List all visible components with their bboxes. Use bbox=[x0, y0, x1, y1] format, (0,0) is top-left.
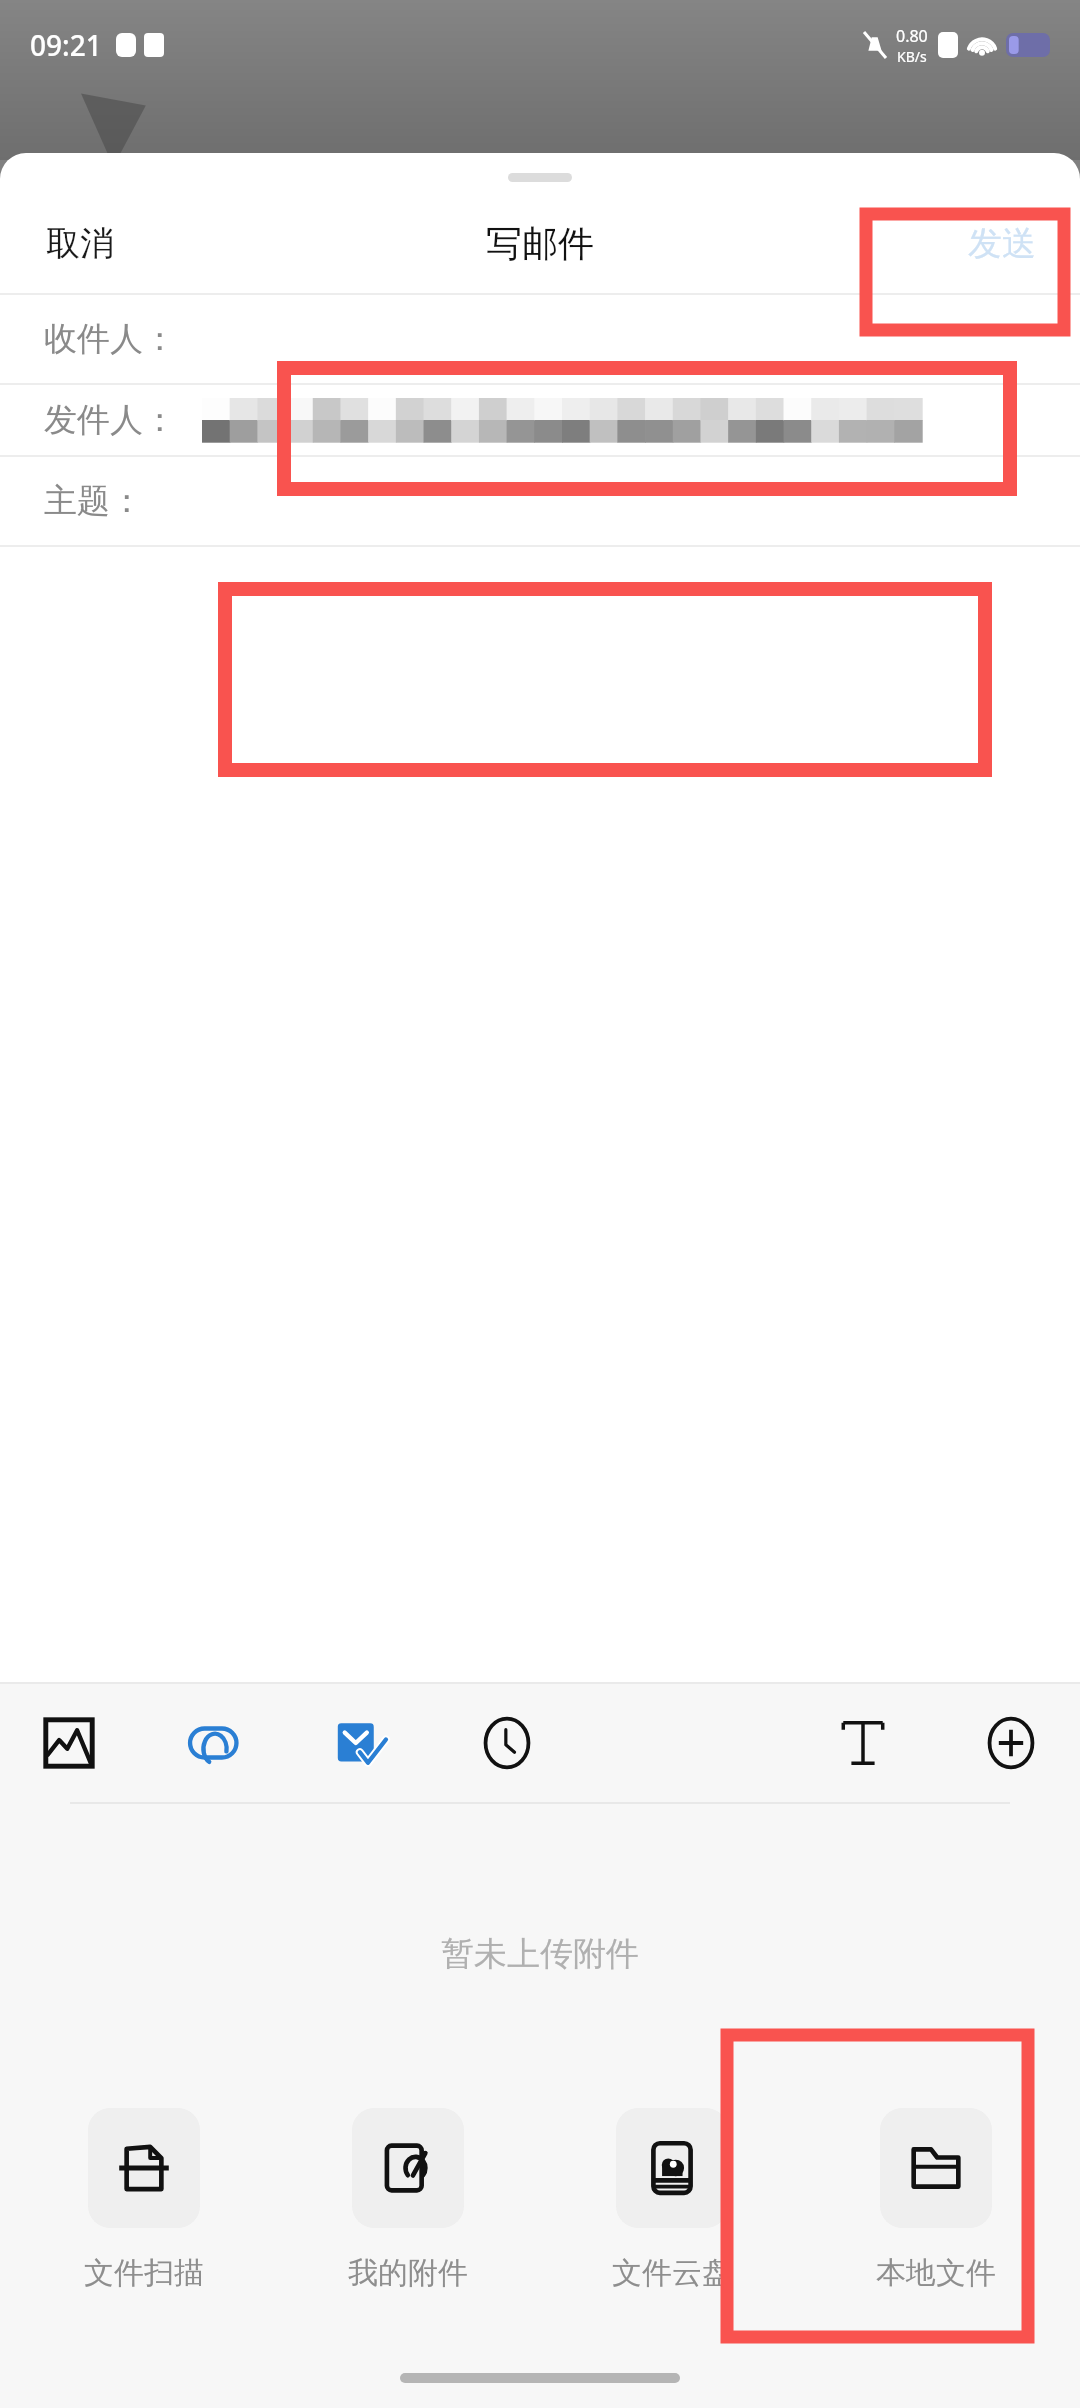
staticText: 主题： bbox=[44, 480, 143, 522]
button[interactable]: 发送 bbox=[952, 208, 1052, 279]
button[interactable]: 发件人： bbox=[0, 385, 1080, 455]
button[interactable]: 主题： bbox=[0, 457, 1080, 545]
button[interactable]: 文件云盘 bbox=[558, 2104, 786, 2296]
button[interactable]: Insert image bbox=[30, 1704, 108, 1782]
staticText: 暂未上传附件 bbox=[441, 1933, 639, 1975]
staticText: 我的附件 bbox=[348, 2254, 468, 2292]
staticText: 发件人： bbox=[44, 399, 176, 441]
button[interactable]: Attachment bbox=[176, 1704, 254, 1782]
button[interactable]: 本地文件 bbox=[822, 2104, 1050, 2296]
staticText: 发送 bbox=[968, 222, 1036, 265]
staticText: 收件人： bbox=[44, 318, 176, 360]
button[interactable]: 收件人： bbox=[0, 295, 1080, 383]
staticText: 取消 bbox=[46, 222, 114, 265]
button[interactable]: 我的附件 bbox=[294, 2104, 522, 2296]
button[interactable]: Read receipt bbox=[322, 1704, 400, 1782]
staticText: 0.80 bbox=[896, 25, 928, 47]
button[interactable]: Schedule send bbox=[468, 1704, 546, 1782]
staticText: 写邮件 bbox=[486, 221, 594, 266]
button[interactable]: More bbox=[972, 1704, 1050, 1782]
staticText: 文件云盘 bbox=[612, 2254, 732, 2292]
staticText: 文件扫描 bbox=[84, 2254, 204, 2292]
button[interactable]: 文件扫描 bbox=[30, 2104, 258, 2296]
staticText: 09:21 bbox=[30, 26, 102, 64]
staticText: 本地文件 bbox=[876, 2254, 996, 2292]
button[interactable]: 取消 bbox=[20, 208, 140, 279]
button[interactable]: Text format bbox=[824, 1704, 902, 1782]
staticText: KB/s bbox=[897, 47, 927, 66]
